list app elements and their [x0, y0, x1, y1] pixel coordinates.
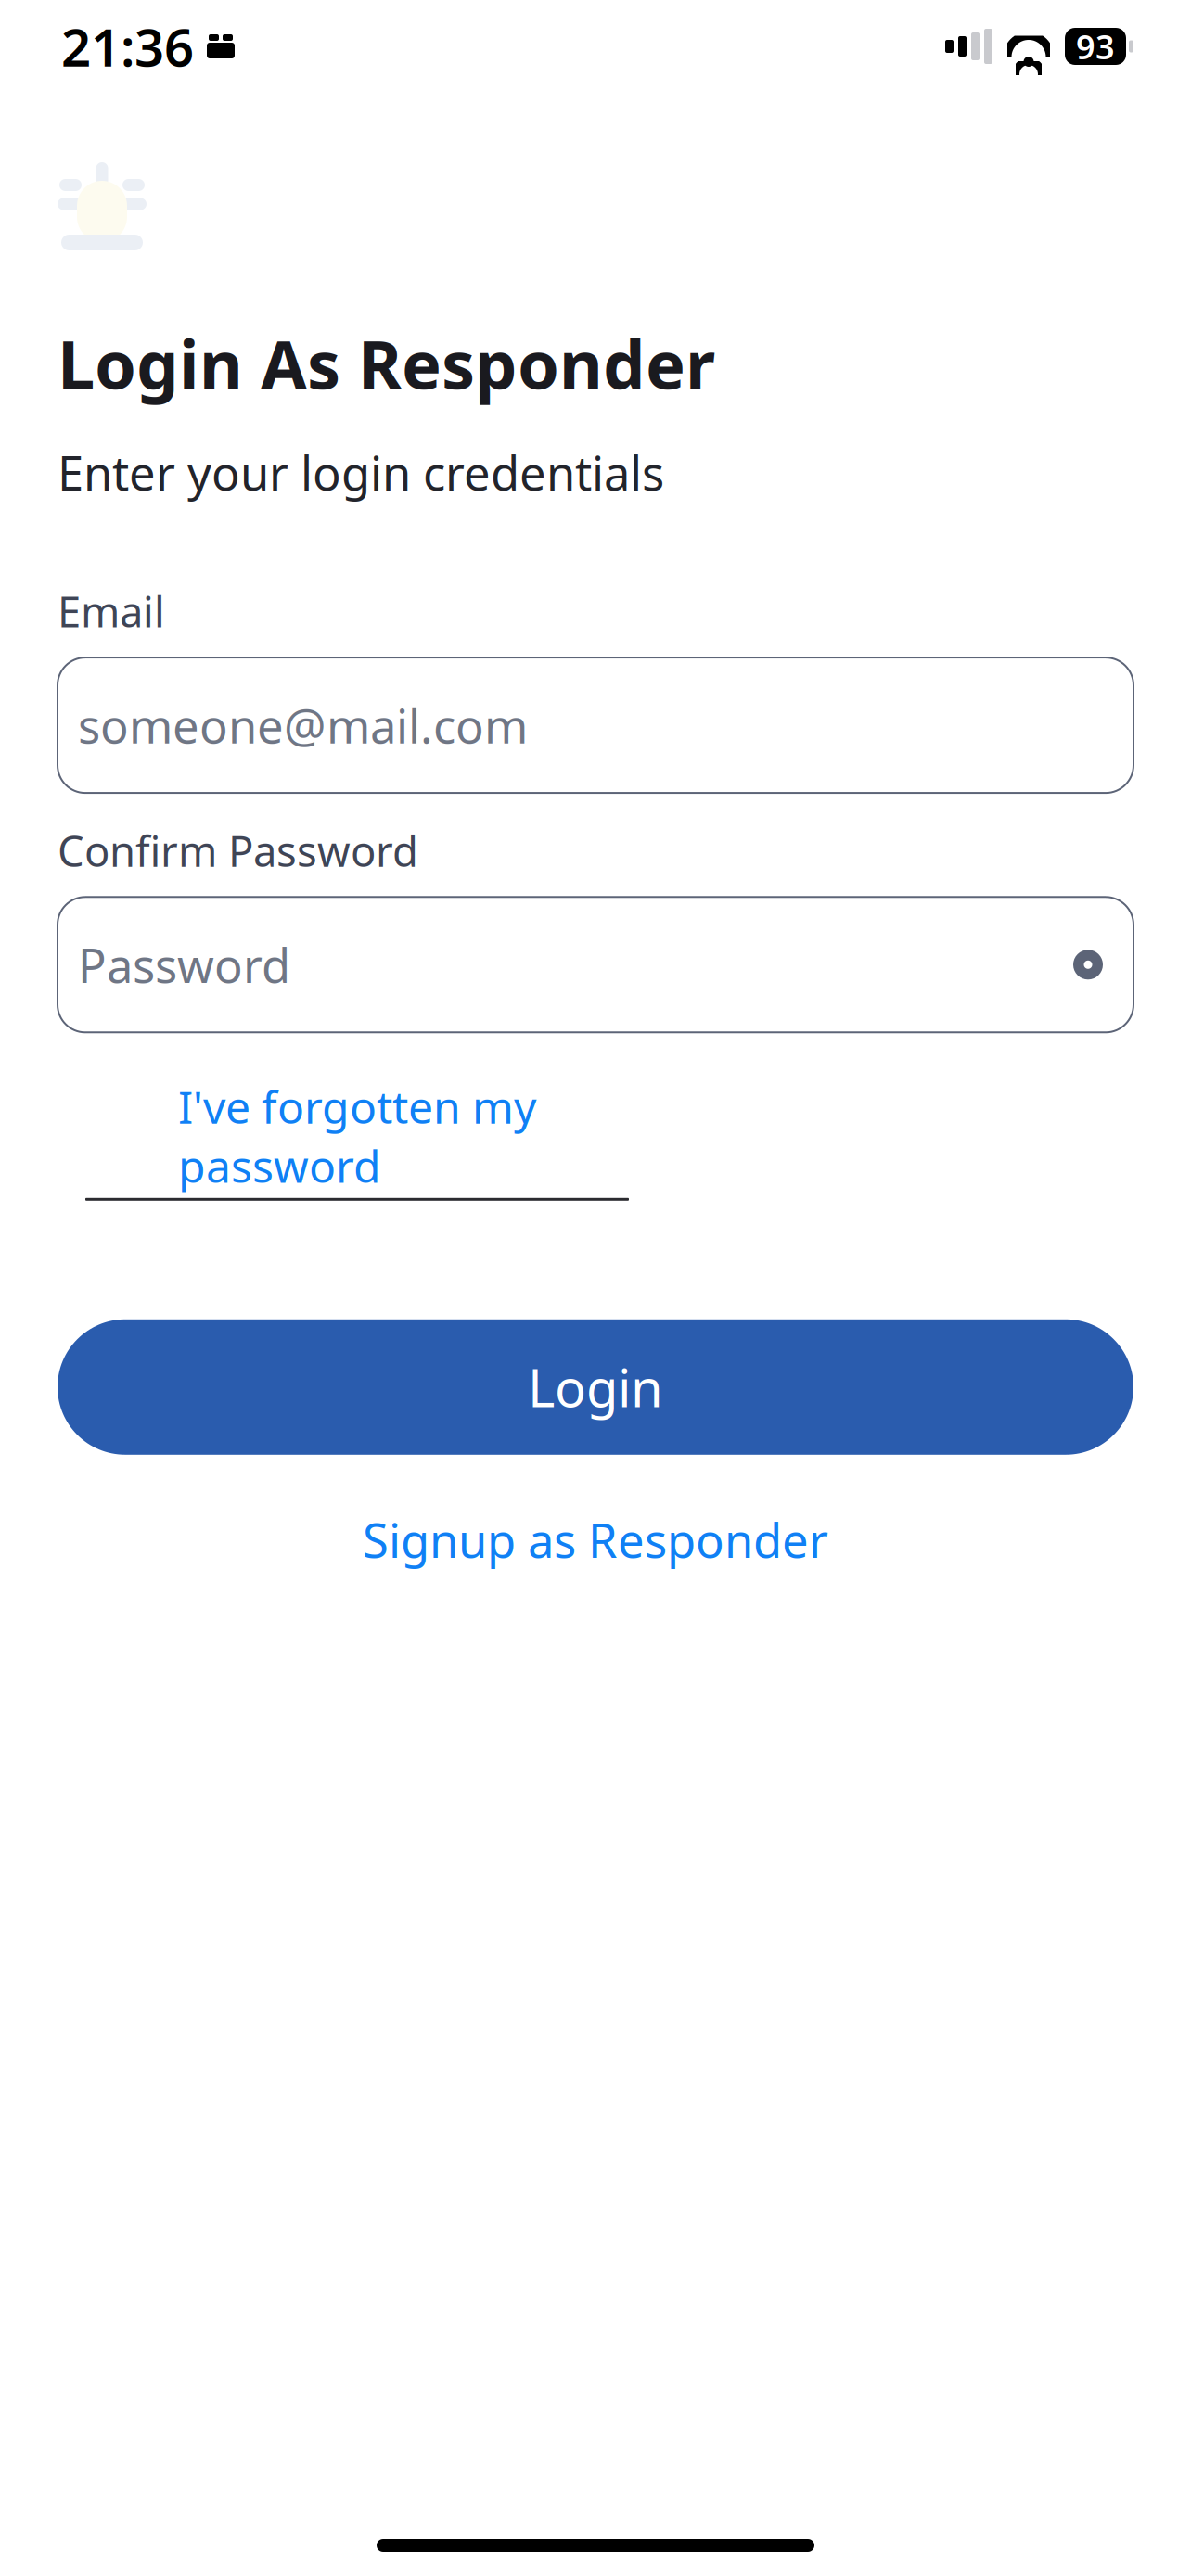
button[interactable]: Password [58, 897, 1133, 1032]
staticText: Login As Responder [58, 319, 715, 408]
staticText: Enter your login credentials [58, 441, 664, 503]
staticText: Password [78, 933, 290, 996]
staticText: Email [58, 583, 165, 639]
staticText: someone@mail.com [78, 694, 528, 756]
staticText: Signup as Responder [363, 1509, 828, 1571]
button[interactable]: I've forgotten my password [85, 1077, 629, 1201]
staticText: Login [528, 1353, 663, 1422]
button[interactable]: someone@mail.com [58, 658, 1133, 793]
button[interactable]: Login [58, 1319, 1133, 1455]
staticText: 21:36 [61, 12, 194, 81]
staticText: 93 [1076, 24, 1115, 69]
staticText: I've forgotten my password [178, 1077, 536, 1195]
button[interactable]: Show password [1057, 941, 1119, 989]
staticText: Confirm Password [58, 823, 418, 878]
button[interactable]: Signup as Responder [58, 1492, 1133, 1588]
